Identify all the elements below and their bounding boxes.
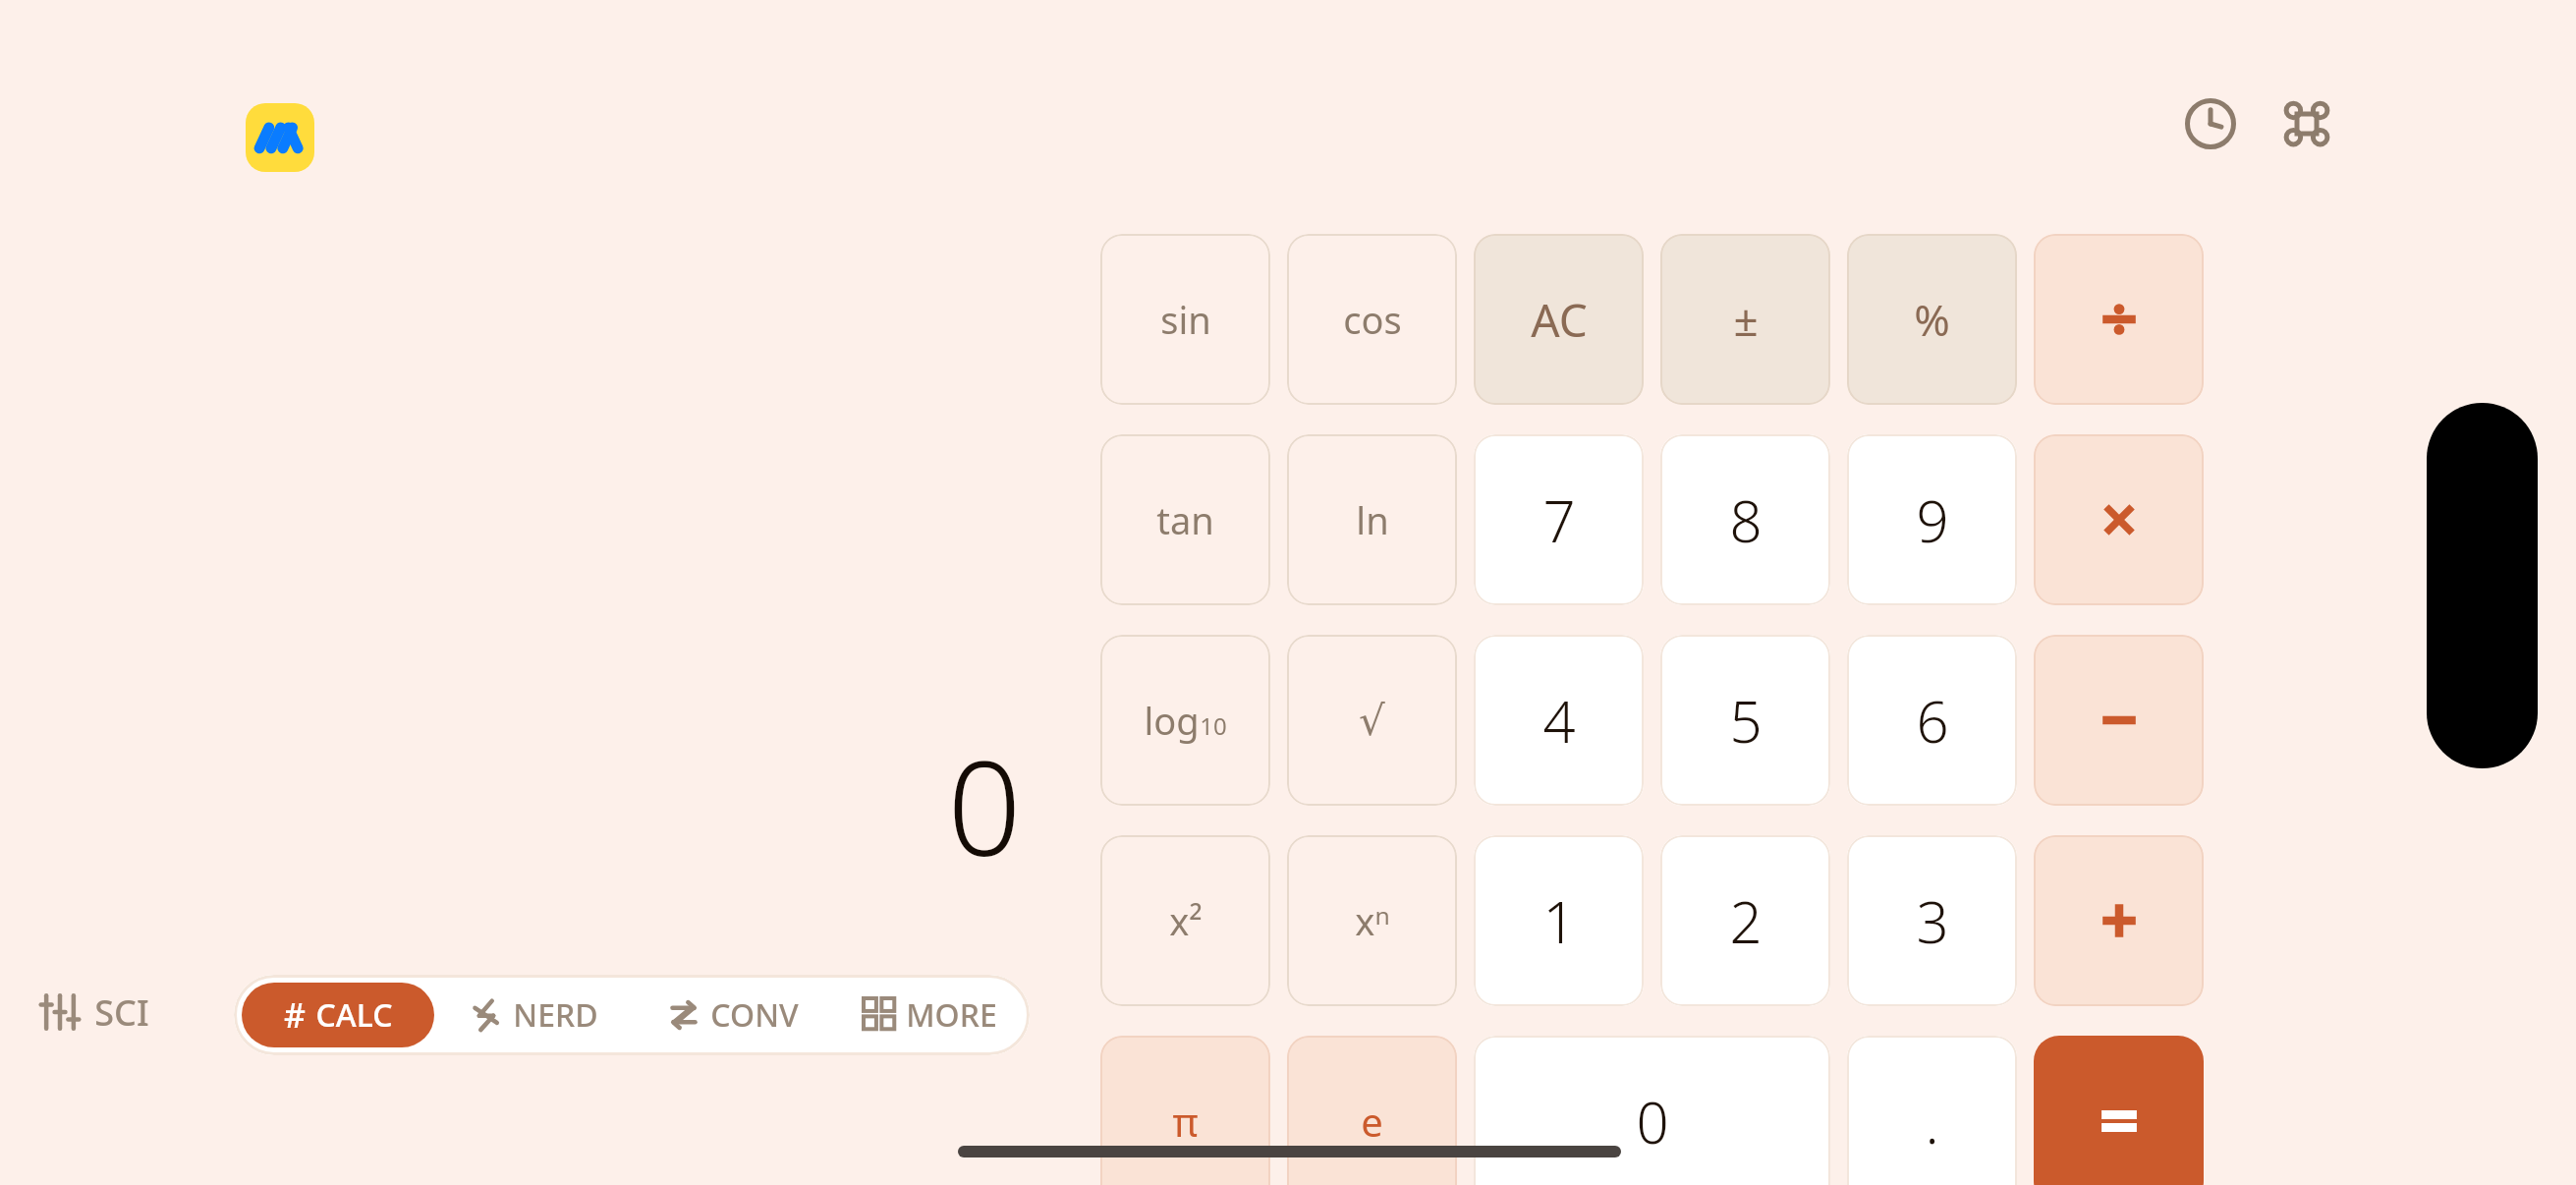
button[interactable]: AC	[1474, 234, 1644, 405]
button[interactable]: sin	[1100, 234, 1270, 405]
staticText: √	[1359, 697, 1385, 745]
staticText: #	[284, 992, 306, 1038]
staticText: 0	[1636, 1083, 1669, 1160]
button[interactable]: tan	[1100, 434, 1270, 605]
staticText: CALC	[315, 993, 393, 1037]
staticText: 8	[1729, 481, 1763, 559]
staticText: 2	[1729, 882, 1763, 960]
button[interactable]: App logo	[246, 103, 314, 172]
staticText: 7	[1542, 481, 1576, 559]
button[interactable]: Divide	[2034, 234, 2204, 405]
button[interactable]: 8	[1660, 434, 1830, 605]
button[interactable]: SCI	[39, 978, 149, 1046]
button[interactable]: Equals	[2034, 1036, 2204, 1185]
button[interactable]: #	[242, 983, 434, 1047]
button[interactable]: 2	[1660, 835, 1830, 1006]
staticText: MORE	[906, 993, 997, 1037]
button[interactable]: √	[1287, 635, 1457, 806]
staticText: 3	[1916, 882, 1949, 960]
button[interactable]: e	[1287, 1036, 1457, 1185]
staticText: sin	[1160, 294, 1211, 345]
staticText: 10	[1200, 709, 1227, 742]
button[interactable]: Subtract	[2034, 635, 2204, 806]
staticText: xⁿ	[1355, 895, 1390, 946]
staticText: x²	[1169, 895, 1203, 946]
staticText: 1	[1542, 882, 1576, 960]
button[interactable]: log	[1100, 635, 1270, 806]
staticText: log	[1144, 695, 1200, 746]
staticText: 9	[1916, 481, 1949, 559]
button[interactable]: 0	[1474, 1036, 1830, 1185]
staticText: .	[1925, 1083, 1939, 1160]
staticText: CONV	[710, 993, 799, 1037]
staticText: 5	[1729, 682, 1763, 760]
button[interactable]: 4	[1474, 635, 1644, 806]
staticText: e	[1361, 1095, 1383, 1148]
staticText: 4	[1542, 682, 1576, 760]
button[interactable]: 6	[1847, 635, 2017, 806]
button[interactable]: x²	[1100, 835, 1270, 1006]
staticText: %	[1914, 290, 1950, 349]
button[interactable]: MORE	[831, 975, 1030, 1055]
button[interactable]: NERD	[434, 975, 633, 1055]
staticText: 6	[1916, 682, 1949, 760]
staticText: cos	[1343, 294, 1402, 345]
button[interactable]: Shortcuts	[2269, 86, 2344, 161]
staticText: 0	[947, 717, 1022, 875]
button[interactable]: History	[2173, 86, 2248, 161]
button[interactable]: Multiply	[2034, 434, 2204, 605]
button[interactable]: 3	[1847, 835, 2017, 1006]
staticText: ln	[1356, 494, 1389, 545]
staticText: SCI	[94, 988, 149, 1037]
button[interactable]: π	[1100, 1036, 1270, 1185]
button[interactable]: %	[1847, 234, 2017, 405]
button[interactable]: 1	[1474, 835, 1644, 1006]
staticText: NERD	[513, 993, 598, 1037]
button[interactable]: xⁿ	[1287, 835, 1457, 1006]
button[interactable]: cos	[1287, 234, 1457, 405]
button[interactable]: 7	[1474, 434, 1644, 605]
staticText: tan	[1156, 494, 1214, 545]
button[interactable]: CONV	[633, 975, 831, 1055]
button[interactable]: ±	[1660, 234, 1830, 405]
button[interactable]: ln	[1287, 434, 1457, 605]
button[interactable]: .	[1847, 1036, 2017, 1185]
staticText: π	[1172, 1095, 1199, 1148]
staticText: ±	[1733, 290, 1759, 349]
staticText: AC	[1531, 289, 1588, 351]
button[interactable]: 9	[1847, 434, 2017, 605]
button[interactable]: Add	[2034, 835, 2204, 1006]
button[interactable]: 5	[1660, 635, 1830, 806]
